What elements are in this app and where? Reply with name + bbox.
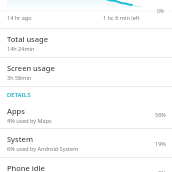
button[interactable]: Apps (0, 101, 172, 128)
staticText: 56% (155, 111, 166, 118)
staticText: System (7, 134, 34, 144)
staticText: 14h 24min (7, 45, 35, 52)
button[interactable]: System (0, 129, 172, 157)
staticText: Apps (7, 106, 25, 116)
staticText: 19% (155, 140, 166, 147)
button[interactable]: Screen usage (0, 58, 172, 86)
staticText: Phone idle (7, 163, 45, 172)
staticText: Screen usage (7, 63, 55, 73)
staticText: DETAILS (7, 91, 31, 98)
staticText: 14 hr ago (7, 14, 32, 21)
staticText: 4% used by Maps (7, 117, 52, 124)
staticText: 6% used by Android System (7, 145, 79, 152)
staticText: 2% (158, 169, 166, 172)
staticText: 3h 58min (7, 74, 32, 81)
staticText: Total usage (7, 34, 49, 44)
staticText: 0% (157, 8, 165, 15)
button[interactable]: Phone idle (0, 158, 172, 172)
button[interactable]: DETAILS (0, 87, 172, 101)
staticText: 1 hr, 6 min left (103, 14, 140, 21)
button[interactable]: Total usage (0, 29, 172, 57)
